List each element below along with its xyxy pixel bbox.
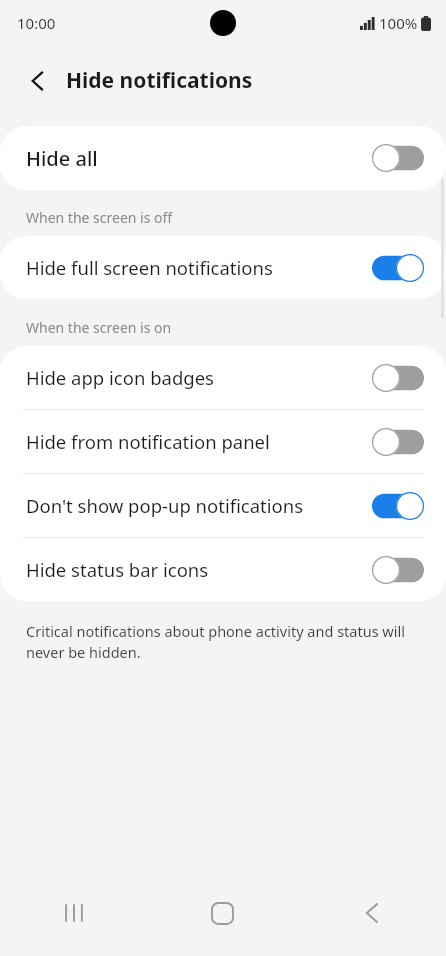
staticText: Hide all <box>26 145 372 172</box>
button[interactable]: Recents <box>0 870 148 956</box>
staticText: Hide status bar icons <box>26 557 372 582</box>
staticText: 100% <box>379 13 418 33</box>
staticText: Hide from notification panel <box>26 429 372 454</box>
button[interactable]: Back <box>16 59 60 103</box>
staticText: Critical notifications about phone activ… <box>26 621 416 663</box>
staticText: When the screen is off <box>26 208 173 227</box>
staticText: When the screen is on <box>26 318 172 337</box>
staticText: 10:00 <box>17 13 56 33</box>
button[interactable]: Hide from notification panel <box>0 410 446 473</box>
button[interactable]: Hide all <box>0 126 446 190</box>
button[interactable]: Hide full screen notifications <box>0 236 446 299</box>
button[interactable]: Hide app icon badges <box>0 346 446 409</box>
button[interactable]: Back <box>297 870 446 956</box>
button[interactable]: Hide status bar icons <box>0 538 446 601</box>
staticText: Hide app icon badges <box>26 365 372 390</box>
staticText: Hide full screen notifications <box>26 255 372 280</box>
staticText: Hide notifications <box>66 66 253 95</box>
button[interactable]: Don't show pop-up notifications <box>0 474 446 537</box>
staticText: Don't show pop-up notifications <box>26 493 372 518</box>
button[interactable]: Home <box>148 870 297 956</box>
